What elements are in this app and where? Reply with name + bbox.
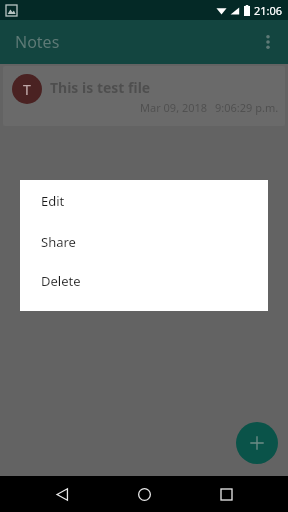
button[interactable]: Home <box>124 476 164 512</box>
button[interactable]: Back <box>42 476 82 512</box>
staticText: Delete <box>41 272 81 290</box>
button[interactable]: Share <box>20 222 268 261</box>
staticText: Edit <box>41 192 65 210</box>
staticText: 21:06 <box>254 3 283 18</box>
staticText: Mar 09, 2018 <box>140 100 208 115</box>
staticText: 9:06:29 p.m. <box>215 100 279 115</box>
button[interactable]: T <box>3 66 285 126</box>
staticText: Share <box>41 233 76 251</box>
button[interactable]: Edit <box>20 180 268 222</box>
button[interactable]: Add note <box>236 422 278 464</box>
button[interactable]: Delete <box>20 261 268 300</box>
staticText: Notes <box>15 31 60 53</box>
staticText: This is test file <box>50 78 151 97</box>
button[interactable]: More options <box>248 22 288 62</box>
button[interactable]: Recent apps <box>206 476 246 512</box>
staticText: T <box>23 80 31 99</box>
